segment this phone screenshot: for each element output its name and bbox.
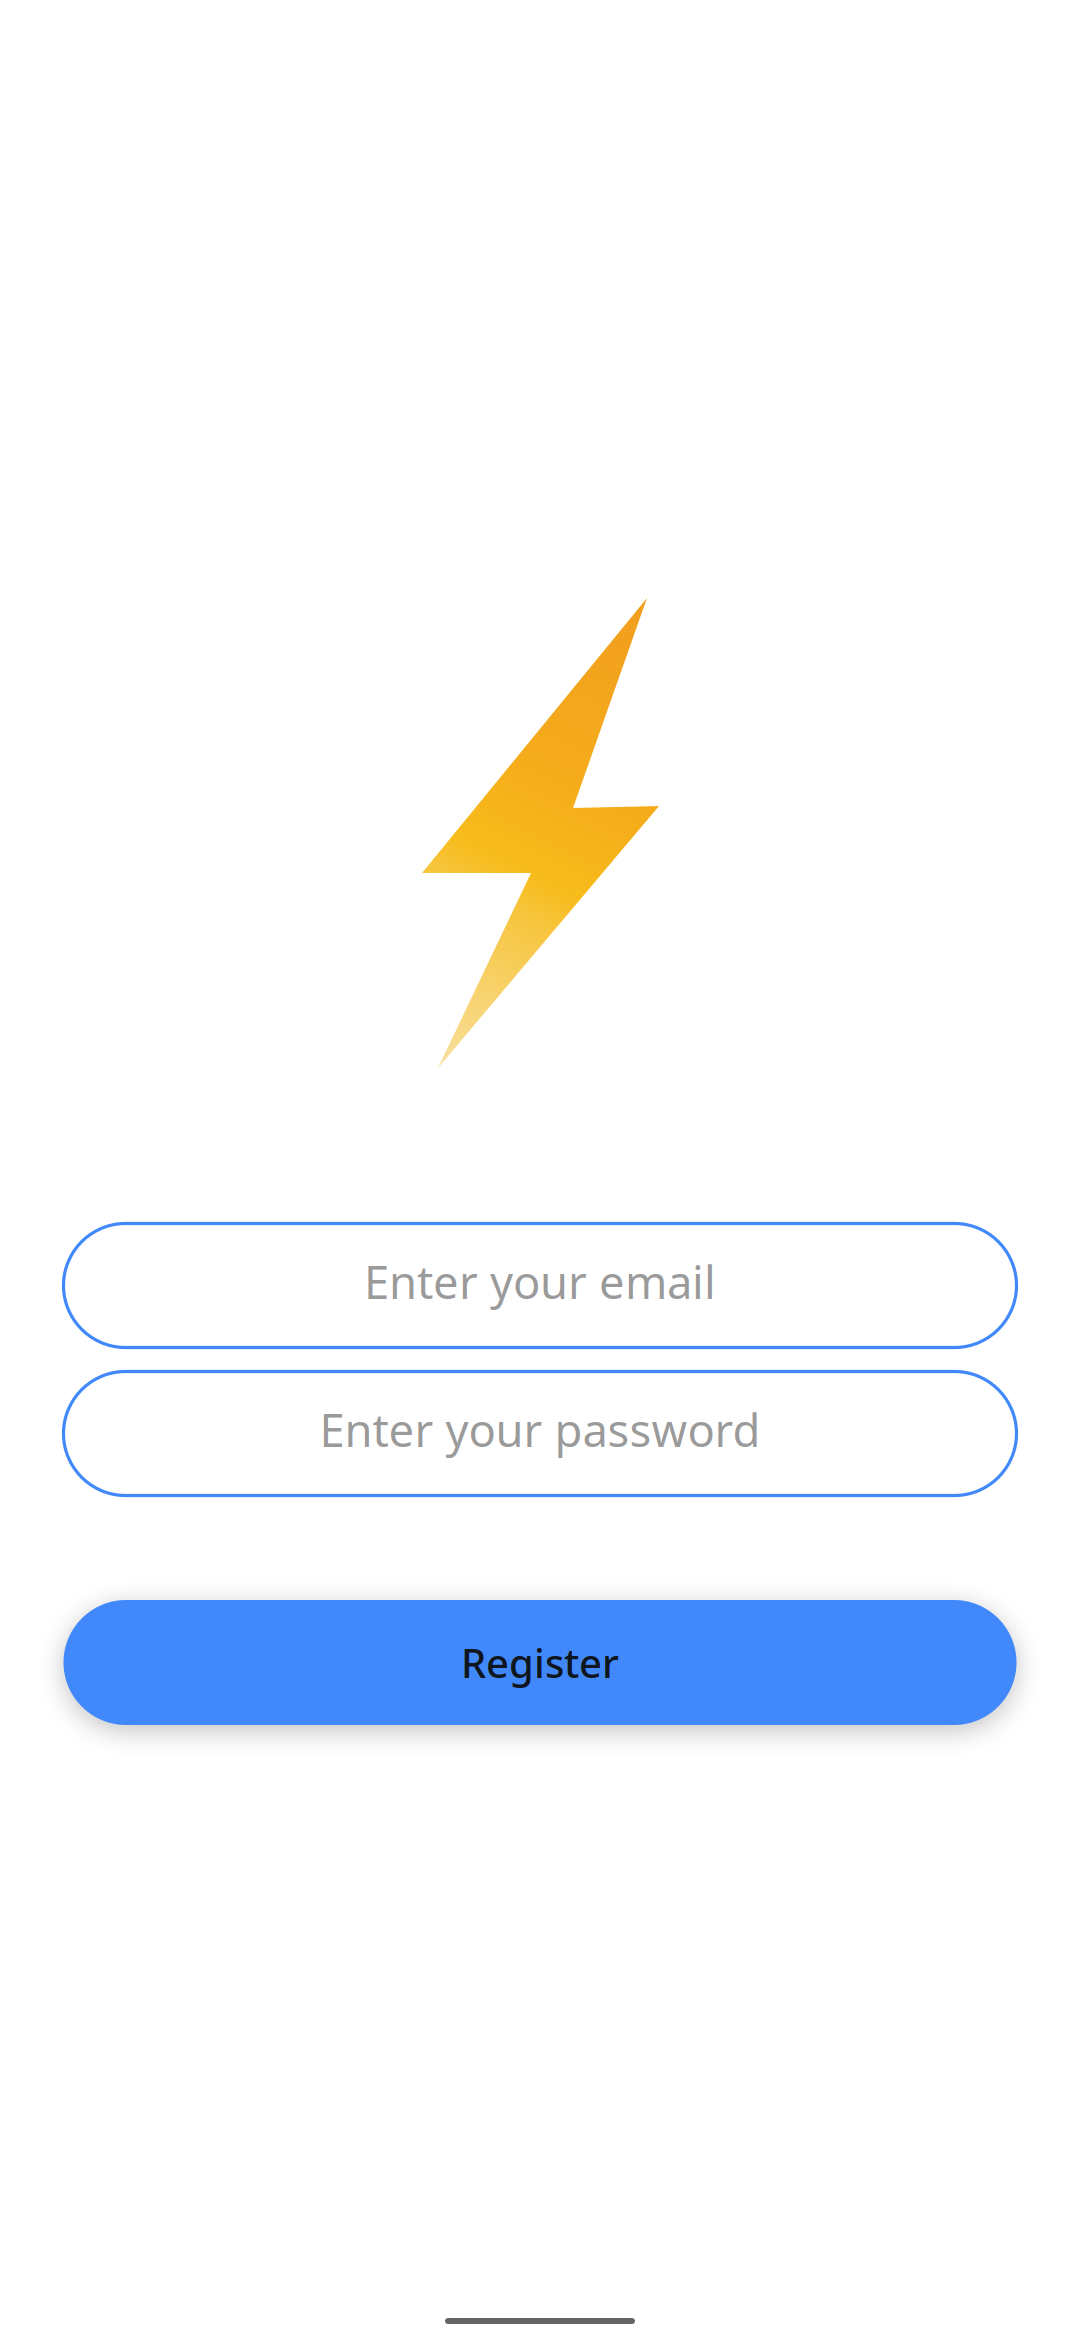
button[interactable]: Enter your password: [63, 1371, 1016, 1495]
button[interactable]: Register: [63, 1600, 1016, 1725]
staticText: Enter your password: [319, 1399, 760, 1460]
staticText: Register: [461, 1636, 619, 1689]
staticText: Enter your email: [364, 1251, 716, 1312]
button[interactable]: Enter your email: [63, 1223, 1016, 1347]
